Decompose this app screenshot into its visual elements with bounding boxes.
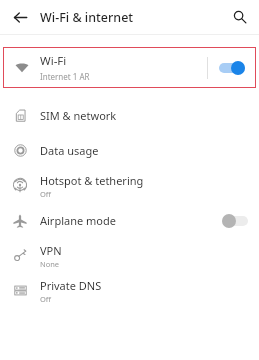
- staticText: None: [40, 259, 60, 269]
- button[interactable]: Hotspot & tethering: [0, 168, 259, 203]
- button[interactable]: Wi-Fi toggle: [208, 47, 256, 88]
- staticText: Private DNS: [40, 278, 102, 293]
- staticText: Data usage: [40, 143, 99, 158]
- button[interactable]: SIM & network: [0, 98, 259, 133]
- staticText: Off: [40, 294, 52, 304]
- staticText: Off: [40, 189, 52, 199]
- button[interactable]: Back: [8, 5, 32, 29]
- staticText: Hotspot & tethering: [40, 173, 144, 188]
- button[interactable]: Search: [228, 5, 252, 29]
- button[interactable]: Airplane mode toggle: [211, 214, 259, 228]
- button[interactable]: Airplane mode: [0, 203, 259, 238]
- staticText: SIM & network: [40, 108, 117, 123]
- staticText: Wi-Fi & internet: [40, 9, 134, 26]
- staticText: VPN: [40, 243, 62, 258]
- button[interactable]: Data usage: [0, 133, 259, 168]
- button[interactable]: Wi-Fi: [3, 47, 256, 88]
- button[interactable]: VPN: [0, 238, 259, 273]
- staticText: Wi-Fi: [40, 53, 67, 69]
- button[interactable]: Private DNS: [0, 273, 259, 308]
- staticText: Airplane mode: [40, 213, 116, 228]
- staticText: Internet 1 AR: [40, 71, 90, 82]
